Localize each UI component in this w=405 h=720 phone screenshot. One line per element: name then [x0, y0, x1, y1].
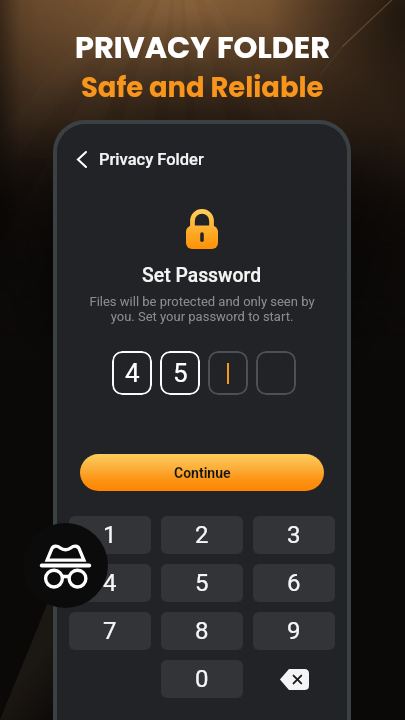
staticText: 2 — [195, 521, 209, 549]
staticText: 6 — [287, 569, 301, 597]
staticText: Continue — [174, 465, 231, 481]
button[interactable]: 5 — [160, 351, 200, 395]
button[interactable]: 4 — [69, 564, 151, 602]
staticText: 4 — [125, 358, 140, 388]
button[interactable]: Incognito mode — [23, 523, 108, 608]
button[interactable] — [208, 351, 248, 395]
staticText: 3 — [287, 521, 301, 549]
staticText: Set Password — [142, 264, 262, 287]
staticText: 5 — [173, 358, 188, 388]
button[interactable]: 2 — [161, 516, 243, 554]
staticText: 4 — [103, 569, 117, 597]
staticText: 9 — [287, 617, 301, 645]
button[interactable]: 0 — [161, 660, 243, 698]
staticText: 1 — [103, 521, 117, 549]
button[interactable]: 5 — [161, 564, 243, 602]
button[interactable]: Continue — [80, 454, 324, 491]
button[interactable]: 1 — [69, 516, 151, 554]
staticText: Files will be protected and only seen by… — [79, 294, 325, 324]
button[interactable]: 4 — [112, 351, 152, 395]
button[interactable]: Backspace — [253, 660, 335, 698]
button[interactable]: 9 — [253, 612, 335, 650]
button[interactable]: Back — [71, 148, 93, 170]
staticText: 8 — [195, 617, 209, 645]
button[interactable]: 8 — [161, 612, 243, 650]
button[interactable] — [256, 351, 296, 395]
staticText: 5 — [195, 569, 209, 597]
button[interactable]: 7 — [69, 612, 151, 650]
staticText: PRIVACY FOLDER — [75, 26, 330, 68]
staticText: 7 — [103, 617, 117, 645]
staticText: 0 — [195, 665, 209, 693]
button[interactable]: 6 — [253, 564, 335, 602]
staticText: Privacy Folder — [99, 150, 204, 169]
staticText: Safe and Reliable — [81, 68, 324, 106]
button[interactable]: 3 — [253, 516, 335, 554]
